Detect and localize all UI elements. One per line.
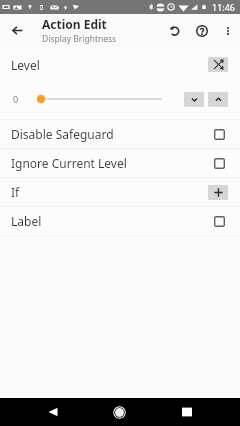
- button[interactable]: Add condition: [208, 185, 228, 200]
- staticText: If: [11, 184, 20, 200]
- button[interactable]: Level slider: [32, 92, 162, 106]
- staticText: Action Edit: [42, 16, 107, 32]
- button[interactable]: Help: [188, 14, 215, 47]
- button[interactable]: Variable: [208, 57, 228, 72]
- button[interactable]: More options: [215, 14, 240, 47]
- staticText: Label: [11, 213, 42, 229]
- staticText: Disable Safeguard: [11, 126, 114, 142]
- button[interactable]: Undo: [161, 14, 188, 47]
- button[interactable]: Disable Safeguard: [0, 120, 240, 148]
- staticText: Ignore Current Level: [11, 155, 127, 171]
- button[interactable]: Ignore Current Level: [0, 149, 240, 177]
- button[interactable]: Increase: [208, 92, 228, 107]
- button[interactable]: Level: [0, 47, 240, 82]
- button[interactable]: Label: [0, 207, 240, 235]
- button[interactable]: Back: [34, 398, 71, 426]
- staticText: 11:46: [212, 1, 236, 13]
- button[interactable]: If: [0, 178, 240, 206]
- button[interactable]: Decrease: [184, 92, 204, 107]
- button[interactable]: Recent apps: [168, 398, 205, 426]
- button[interactable]: Home: [101, 398, 138, 426]
- staticText: 0: [13, 93, 19, 105]
- staticText: Level: [11, 57, 40, 73]
- button[interactable]: Navigate up: [0, 14, 35, 47]
- staticText: Display Brightness: [42, 33, 117, 45]
